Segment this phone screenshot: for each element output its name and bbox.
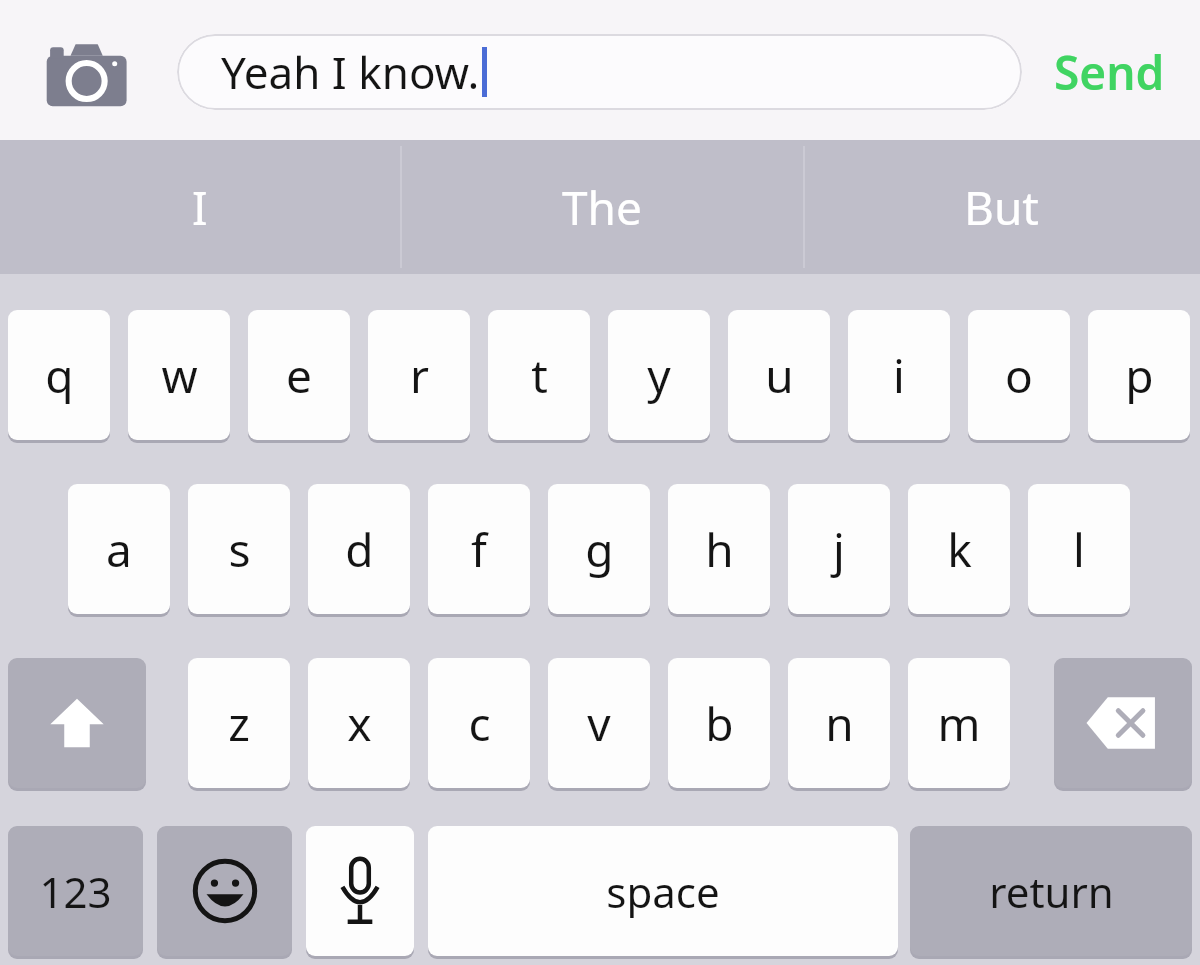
staticText: l [1073,518,1085,581]
button[interactable]: t [488,310,590,440]
staticText: r [410,344,429,407]
button[interactable]: e [248,310,350,440]
button[interactable]: p [1088,310,1190,440]
staticText: a [106,518,132,581]
staticText: space [606,863,720,920]
staticText: j [833,518,845,581]
button[interactable]: Send [1034,34,1184,110]
button[interactable]: h [668,484,770,614]
button[interactable]: a [68,484,170,614]
button[interactable]: v [548,658,650,788]
button[interactable]: Shift [8,658,146,788]
staticText: f [471,518,487,581]
button[interactable]: w [128,310,230,440]
button[interactable]: space [428,826,898,956]
staticText: k [947,518,972,581]
button[interactable]: Emoji [157,826,292,956]
button[interactable]: y [608,310,710,440]
staticText: But [964,176,1039,239]
button[interactable]: x [308,658,410,788]
button[interactable]: n [788,658,890,788]
button[interactable]: f [428,484,530,614]
button[interactable]: I [0,140,400,274]
button[interactable]: q [8,310,110,440]
button[interactable]: d [308,484,410,614]
button[interactable]: b [668,658,770,788]
button[interactable]: Dictate [306,826,414,956]
staticText: c [468,692,491,755]
staticText: p [1125,344,1154,407]
button[interactable]: r [368,310,470,440]
button[interactable]: But [803,140,1200,274]
button[interactable]: i [848,310,950,440]
button[interactable]: m [908,658,1010,788]
button[interactable]: o [968,310,1070,440]
staticText: b [705,692,734,755]
staticText: q [45,344,74,407]
staticText: The [562,176,642,239]
staticText: n [825,692,854,755]
staticText: w [161,344,198,407]
button[interactable]: c [428,658,530,788]
staticText: h [705,518,734,581]
button[interactable]: Yeah I know. [177,34,1022,110]
button[interactable]: 123 [8,826,143,956]
staticText: I [192,176,208,239]
button[interactable]: z [188,658,290,788]
staticText: z [228,692,250,755]
button[interactable]: g [548,484,650,614]
button[interactable]: return [910,826,1192,956]
staticText: d [345,518,374,581]
staticText: v [587,692,611,755]
button[interactable]: Camera [45,40,130,112]
staticText: Yeah I know. [221,42,480,102]
button[interactable]: s [188,484,290,614]
staticText: t [531,344,548,407]
button[interactable]: k [908,484,1010,614]
staticText: g [585,518,614,581]
staticText: Send [1054,41,1165,104]
staticText: o [1005,344,1033,407]
staticText: m [937,692,981,755]
staticText: u [765,344,794,407]
button[interactable]: u [728,310,830,440]
button[interactable]: The [400,140,803,274]
button[interactable]: Backspace [1054,658,1192,788]
staticText: e [286,344,312,407]
staticText: return [989,863,1114,920]
button[interactable]: l [1028,484,1130,614]
button[interactable]: j [788,484,890,614]
staticText: y [647,344,671,407]
staticText: 123 [39,863,112,920]
staticText: i [893,344,905,407]
staticText: s [228,518,251,581]
staticText: x [347,692,372,755]
